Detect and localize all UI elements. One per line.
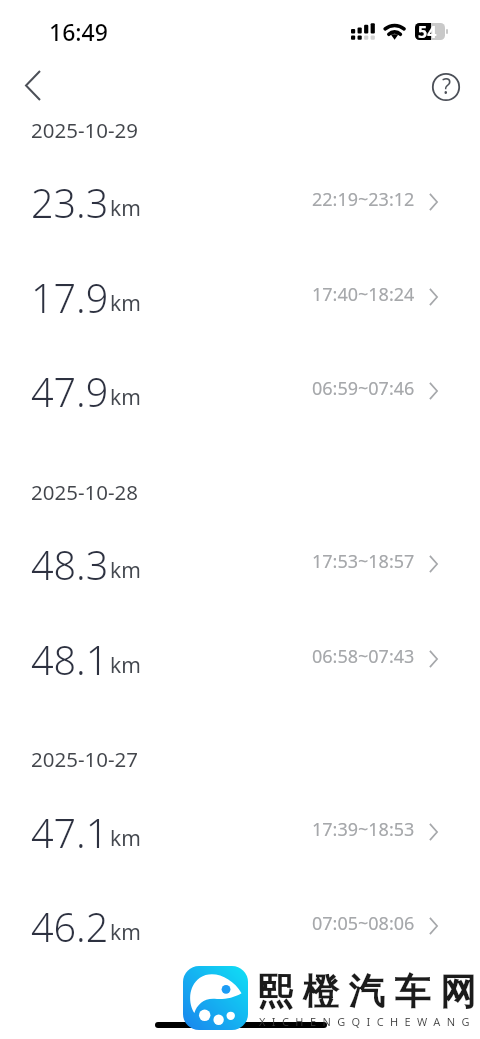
button[interactable]: 46.2	[0, 880, 480, 975]
staticText: 17:39~18:53	[312, 817, 415, 842]
staticText: km	[110, 651, 141, 680]
staticText: 47.1	[31, 806, 109, 860]
staticText: 06:58~07:43	[312, 644, 415, 669]
staticText: 2025-10-28	[31, 478, 139, 506]
staticText: 熙橙汽车网	[252, 969, 480, 1014]
staticText: 48.1	[31, 633, 109, 687]
staticText: 2025-10-29	[31, 116, 139, 144]
staticText: 17.9	[31, 271, 109, 325]
button[interactable]: 47.1	[0, 786, 480, 881]
staticText: 17:40~18:24	[312, 282, 415, 307]
staticText: XICHENGQICHEWANG	[259, 1014, 476, 1029]
staticText: km	[110, 194, 141, 223]
button[interactable]: 17.9	[0, 251, 480, 346]
button[interactable]: Back	[9, 61, 57, 109]
staticText: km	[110, 918, 141, 947]
button[interactable]: Help	[425, 66, 466, 107]
staticText: 22:19~23:12	[312, 187, 415, 212]
staticText: km	[110, 556, 141, 585]
staticText: 23.3	[31, 176, 109, 230]
staticText: km	[110, 289, 141, 318]
staticText: 17:53~18:57	[312, 549, 415, 574]
staticText: 54	[418, 21, 437, 43]
staticText: 47.9	[31, 365, 109, 419]
staticText: 16:49	[49, 16, 108, 47]
staticText: km	[110, 824, 141, 853]
button[interactable]: 48.3	[0, 518, 480, 613]
button[interactable]: 47.9	[0, 345, 480, 440]
staticText: 48.3	[31, 538, 109, 592]
staticText: km	[110, 383, 141, 412]
staticText: 06:59~07:46	[312, 376, 415, 401]
staticText: 07:05~08:06	[312, 911, 415, 936]
staticText: ?	[442, 72, 452, 101]
staticText: 46.2	[31, 900, 109, 954]
staticText: 2025-10-27	[31, 745, 139, 773]
button[interactable]: 48.1	[0, 613, 480, 708]
button[interactable]: 23.3	[0, 156, 480, 251]
